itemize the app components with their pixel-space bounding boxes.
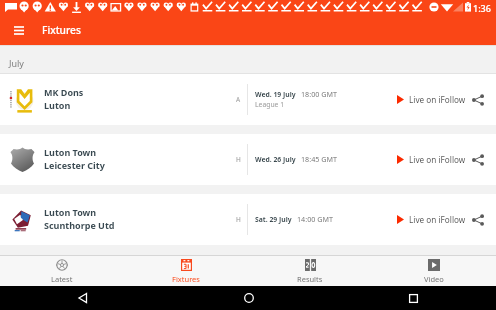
button[interactable]: Share xyxy=(469,91,486,108)
staticText: MK Dons xyxy=(44,86,84,98)
staticText: Video xyxy=(424,274,444,284)
staticText: 14:00 GMT xyxy=(297,214,333,224)
staticText: Fixtures xyxy=(42,23,81,37)
button[interactable]: Recent apps xyxy=(331,286,496,310)
staticText: H xyxy=(236,155,241,164)
button[interactable]: MK Dons xyxy=(0,74,496,125)
button[interactable]: Live on iFollow xyxy=(397,150,466,169)
button[interactable]: Luton Town xyxy=(0,134,496,185)
staticText: Live on iFollow xyxy=(409,214,466,225)
staticText: Live on iFollow xyxy=(409,154,466,165)
staticText: Results xyxy=(297,274,323,284)
button[interactable]: Results xyxy=(248,256,372,286)
staticText: Wed. 19 July xyxy=(255,90,296,99)
staticText: Sat. 29 July xyxy=(255,215,292,224)
staticText: League 1 xyxy=(255,100,285,109)
button[interactable]: Open navigation menu xyxy=(4,16,33,45)
staticText: 18:00 GMT xyxy=(301,89,337,99)
button[interactable]: Fixtures xyxy=(124,256,248,286)
staticText: Latest xyxy=(51,274,73,284)
staticText: Leicester City xyxy=(44,159,105,171)
button[interactable]: Live on iFollow xyxy=(397,90,466,109)
staticText: A xyxy=(236,95,241,104)
staticText: Luton Town xyxy=(44,206,97,218)
button[interactable]: Latest xyxy=(0,256,124,286)
button[interactable]: Live on iFollow xyxy=(397,210,466,229)
staticText: Fixtures xyxy=(172,274,200,284)
button[interactable]: Share xyxy=(469,151,486,168)
staticText: H xyxy=(236,215,241,224)
staticText: Scunthorpe Utd xyxy=(44,219,115,231)
staticText: Wed. 26 July xyxy=(255,155,296,164)
button[interactable]: Luton Town xyxy=(0,194,496,245)
button[interactable]: Back xyxy=(0,286,166,310)
button[interactable]: Video xyxy=(372,256,496,286)
staticText: Luton Town xyxy=(44,146,97,158)
button[interactable]: Share xyxy=(469,211,486,228)
staticText: 18:45 GMT xyxy=(301,154,337,164)
staticText: 1:36 xyxy=(473,2,491,14)
staticText: Live on iFollow xyxy=(409,94,466,105)
staticText: Luton xyxy=(44,99,71,111)
staticText: July xyxy=(9,57,24,69)
button[interactable]: Home xyxy=(166,286,331,310)
